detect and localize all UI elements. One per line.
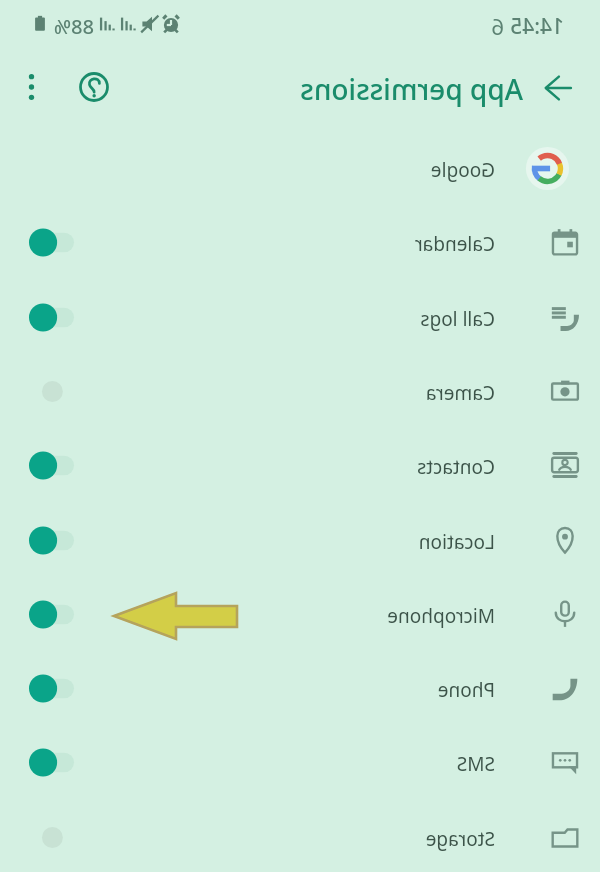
staticText: Contacts (417, 454, 495, 480)
button[interactable]: Storage permission (7, 809, 97, 865)
button[interactable]: More options (8, 63, 56, 111)
button[interactable]: Camera (0, 354, 600, 428)
staticText: Microphone (387, 603, 495, 629)
button[interactable]: SMS (0, 725, 600, 799)
button[interactable]: Storage (0, 800, 600, 872)
staticText: Storage (425, 826, 495, 852)
staticText: Google (430, 157, 495, 183)
button[interactable]: Contacts permission (7, 437, 97, 493)
staticText: 88% (54, 13, 94, 40)
button[interactable]: Help (70, 63, 118, 111)
staticText: Location (418, 529, 495, 555)
button[interactable]: Navigate up (534, 63, 583, 112)
button[interactable]: Call logs permission (7, 289, 97, 345)
staticText: Calendar (414, 231, 495, 257)
staticText: Call logs (420, 306, 495, 332)
button[interactable]: Microphone permission (7, 586, 97, 642)
button[interactable]: SMS permission (7, 734, 97, 790)
button[interactable]: Call logs (0, 280, 600, 354)
staticText: SMS (456, 751, 495, 777)
button[interactable]: Calendar (0, 205, 600, 279)
button[interactable]: Camera permission (7, 363, 97, 419)
button[interactable]: Contacts (0, 428, 600, 502)
button[interactable]: Calendar permission (7, 214, 97, 270)
button[interactable]: Microphone (0, 577, 600, 651)
staticText: App permissions (300, 70, 523, 108)
staticText: 14:45 (510, 12, 564, 41)
button[interactable]: Location (0, 503, 600, 577)
button[interactable]: Google (0, 131, 600, 205)
button[interactable]: Phone permission (7, 660, 97, 716)
button[interactable]: Location permission (7, 512, 97, 568)
button[interactable]: Phone (0, 651, 600, 725)
staticText: Camera (425, 380, 495, 406)
staticText: Phone (437, 677, 495, 703)
staticText: 6 (491, 11, 504, 41)
